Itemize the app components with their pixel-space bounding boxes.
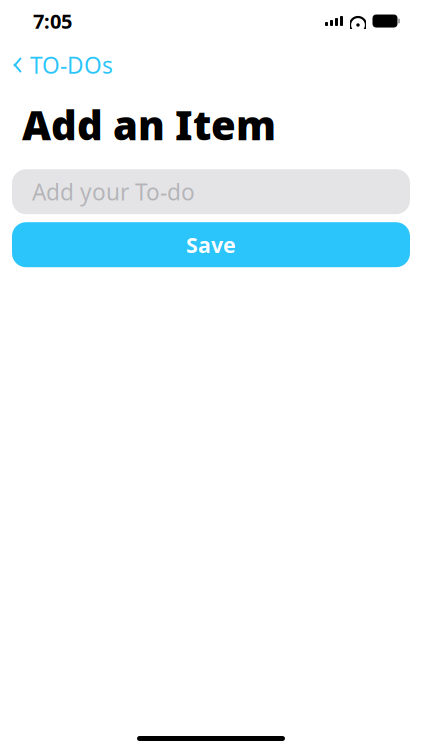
button[interactable]: Save [0, 222, 422, 267]
staticText: Save [186, 231, 236, 259]
button[interactable]: Add your To-do [0, 169, 422, 214]
button[interactable]: TO-DOs [0, 46, 113, 84]
staticText: Add your To-do [32, 177, 195, 207]
staticText: Add an Item [22, 98, 276, 151]
staticText: TO-DOs [30, 50, 113, 80]
staticText: 7:05 [33, 8, 72, 34]
